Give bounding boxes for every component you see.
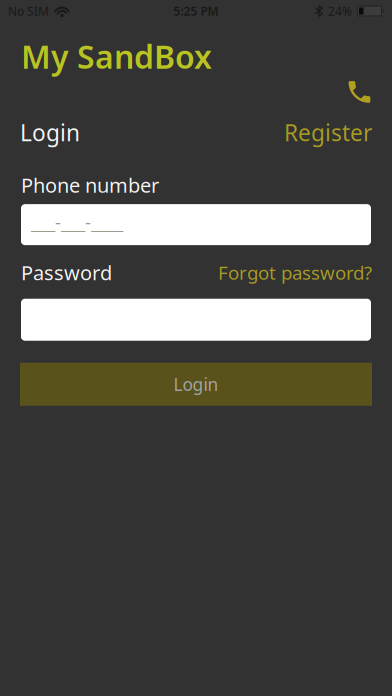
staticText: Password <box>21 259 112 286</box>
staticText: Phone number <box>21 172 159 198</box>
staticText: 5:25 PM <box>173 3 218 19</box>
staticText: Login <box>173 373 218 396</box>
staticText: Forgot password? <box>218 260 372 285</box>
textField[interactable]: ___-___-____ <box>31 209 371 234</box>
staticText: 24% <box>328 3 352 19</box>
staticText: My SandBox <box>21 35 212 77</box>
button[interactable]: Login <box>20 363 372 406</box>
staticText: Login <box>20 117 80 148</box>
button[interactable]: Forgot password? <box>218 260 372 285</box>
button[interactable]: Call <box>345 77 374 106</box>
button[interactable]: Register <box>284 117 372 148</box>
staticText: No SIM <box>8 3 49 19</box>
staticText: Register <box>284 117 372 148</box>
staticText: ___-___-____ <box>31 209 123 234</box>
